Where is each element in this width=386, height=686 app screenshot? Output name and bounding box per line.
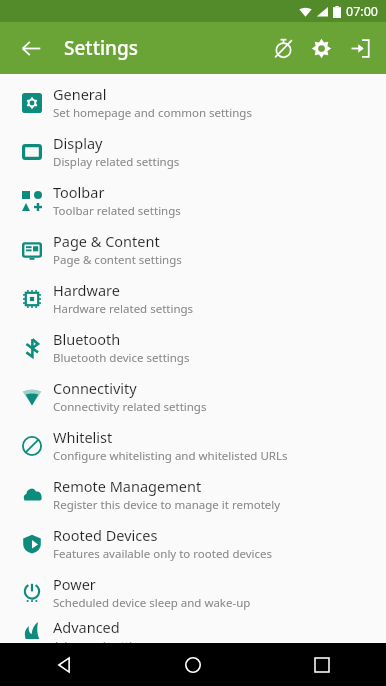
staticText: Advanced settings: [53, 638, 152, 643]
button[interactable]: Toolbar: [0, 176, 386, 225]
staticText: Power: [53, 574, 96, 594]
button[interactable]: Connectivity: [0, 372, 386, 421]
staticText: Toolbar related settings: [53, 203, 181, 219]
staticText: Connectivity: [53, 378, 137, 398]
button[interactable]: Recents: [257, 643, 386, 686]
staticText: Display related settings: [53, 154, 180, 170]
button[interactable]: Display: [0, 127, 386, 176]
button[interactable]: Power: [0, 568, 386, 617]
staticText: General: [53, 84, 107, 104]
staticText: Hardware: [53, 280, 120, 300]
button[interactable]: Page & Content: [0, 225, 386, 274]
button[interactable]: Whitelist: [0, 421, 386, 470]
staticText: Toolbar: [53, 182, 105, 202]
staticText: 07:00: [346, 3, 378, 20]
staticText: Remote Management: [53, 476, 202, 496]
button[interactable]: General: [0, 78, 386, 127]
button[interactable]: Rooted Devices: [0, 519, 386, 568]
staticText: Settings: [64, 35, 138, 61]
staticText: Configure whitelisting and whitelisted U…: [53, 448, 288, 464]
staticText: Hardware related settings: [53, 301, 194, 317]
staticText: Connectivity related settings: [53, 399, 207, 415]
staticText: Scheduled device sleep and wake-up: [53, 595, 251, 611]
staticText: Rooted Devices: [53, 525, 158, 545]
staticText: Register this device to manage it remote…: [53, 497, 281, 513]
staticText: Page & content settings: [53, 252, 182, 268]
button[interactable]: Hardware: [0, 274, 386, 323]
button[interactable]: Advanced: [0, 617, 386, 643]
staticText: Advanced: [53, 617, 120, 637]
button[interactable]: Bluetooth: [0, 323, 386, 372]
button[interactable]: Remote Management: [0, 470, 386, 519]
button[interactable]: Back: [0, 643, 128, 686]
staticText: Set homepage and common settings: [53, 105, 252, 121]
staticText: Page & Content: [53, 231, 160, 251]
button[interactable]: Disable timer: [264, 29, 302, 67]
button[interactable]: Navigate up: [14, 31, 48, 65]
staticText: Bluetooth device settings: [53, 350, 190, 366]
button[interactable]: Home: [128, 643, 257, 686]
button[interactable]: Settings: [302, 29, 340, 67]
staticText: Bluetooth: [53, 329, 121, 349]
staticText: Features available only to rooted device…: [53, 546, 273, 562]
staticText: Whitelist: [53, 427, 113, 447]
staticText: Display: [53, 133, 103, 153]
button[interactable]: Exit: [340, 29, 378, 67]
